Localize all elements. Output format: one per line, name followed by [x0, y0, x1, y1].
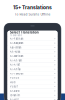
- staticText: Al-An'am: [10, 59, 22, 62]
- staticText: Yusuf: [10, 85, 18, 88]
- staticText: 15 available: [10, 34, 22, 37]
- staticText: Aal-Imran: [10, 46, 22, 49]
- staticText: Al-Anfal: [10, 68, 21, 71]
- button[interactable]: Yunus: [7, 76, 57, 80]
- button[interactable]: Ibrahim: [7, 93, 57, 98]
- button[interactable]: Yusuf: [7, 85, 57, 89]
- staticText: Ar-Ra'd: [10, 89, 20, 92]
- staticText: Al-Hijr: [10, 98, 19, 100]
- button[interactable]: Al-Baqarah: [7, 41, 57, 45]
- button[interactable]: An-Nisa: [7, 50, 57, 54]
- button[interactable]: At-Tawbah: [7, 71, 57, 76]
- staticText: Ibrahim: [10, 94, 20, 97]
- button[interactable]: Al-A'raf: [7, 63, 57, 67]
- button[interactable]: Al-Anfal: [7, 67, 57, 71]
- button[interactable]: Al-Ma'idah: [7, 54, 57, 58]
- staticText: 15+ Translations: [13, 4, 52, 10]
- button[interactable]: Al-Fatihah: [7, 37, 57, 41]
- button[interactable]: Al-Hijr: [7, 98, 57, 100]
- staticText: An-Nisa: [10, 50, 20, 53]
- staticText: Select Translation: [10, 30, 39, 34]
- staticText: At-Tawbah: [10, 72, 24, 75]
- button[interactable]: Aal-Imran: [7, 45, 57, 50]
- staticText: To Read Surahs Offline: [14, 13, 50, 16]
- button[interactable]: Ar-Ra'd: [7, 89, 57, 93]
- staticText: Al-Fatihah: [10, 37, 24, 40]
- staticText: Al-Ma'idah: [10, 54, 24, 58]
- staticText: Hud: [10, 81, 16, 84]
- staticText: Yunus: [10, 76, 19, 79]
- staticText: Al-Baqarah: [10, 41, 24, 45]
- button[interactable]: Hud: [7, 80, 57, 84]
- staticText: Al-A'raf: [10, 63, 20, 66]
- button[interactable]: Al-An'am: [7, 58, 57, 63]
